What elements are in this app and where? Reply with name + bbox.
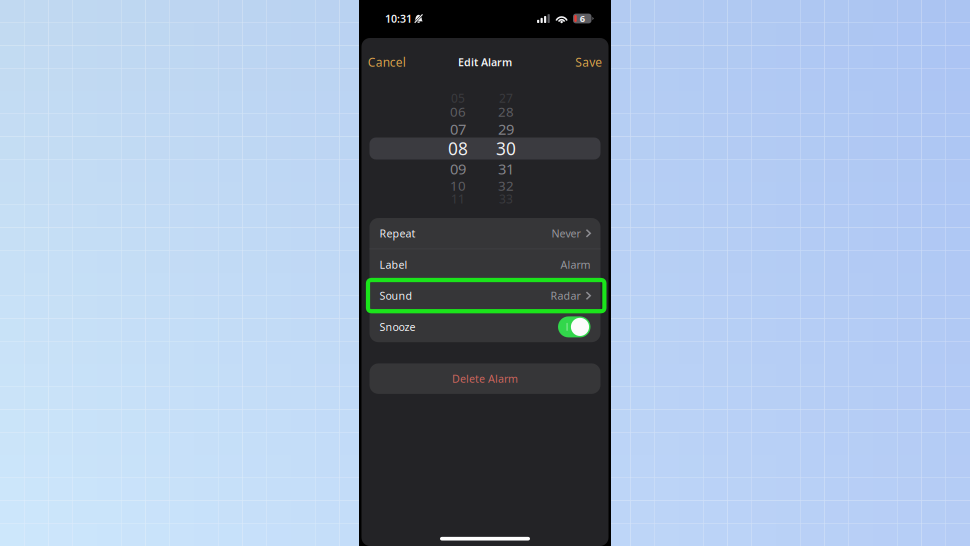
staticText: Sound: [379, 289, 412, 303]
button[interactable]: Label: [369, 249, 600, 280]
staticText: Delete Alarm: [452, 372, 518, 386]
staticText: 30: [496, 137, 516, 160]
button[interactable]: Save: [567, 47, 611, 77]
staticText: 08: [448, 137, 468, 160]
button[interactable]: Repeat: [369, 218, 600, 249]
staticText: Cancel: [368, 54, 406, 70]
staticText: Save: [575, 54, 602, 70]
button[interactable]: Hour: [438, 88, 478, 208]
staticText: 32: [498, 177, 514, 194]
button[interactable]: Cancel: [359, 47, 414, 77]
staticText: 6: [580, 12, 585, 25]
staticText: 09: [450, 159, 466, 178]
staticText: Repeat: [379, 226, 415, 240]
staticText: Alarm: [560, 257, 590, 272]
staticText: 29: [498, 119, 514, 139]
staticText: 10:31: [385, 11, 412, 26]
staticText: Edit Alarm: [458, 55, 512, 69]
staticText: 28: [498, 103, 514, 120]
staticText: Never: [551, 226, 580, 240]
staticText: 33: [499, 191, 513, 207]
button[interactable]: Delete Alarm: [369, 363, 600, 394]
staticText: 07: [450, 119, 466, 139]
staticText: 06: [450, 103, 466, 120]
staticText: Label: [379, 257, 407, 272]
button[interactable]: Minutes: [486, 88, 526, 208]
staticText: 10: [450, 177, 466, 194]
staticText: 11: [451, 191, 465, 207]
staticText: 27: [499, 90, 513, 106]
staticText: Snooze: [379, 320, 415, 334]
button[interactable]: Sound: [369, 280, 600, 311]
staticText: 05: [451, 90, 465, 106]
staticText: 31: [498, 159, 514, 178]
button[interactable]: Snooze: [369, 312, 600, 342]
staticText: Radar: [550, 289, 580, 303]
